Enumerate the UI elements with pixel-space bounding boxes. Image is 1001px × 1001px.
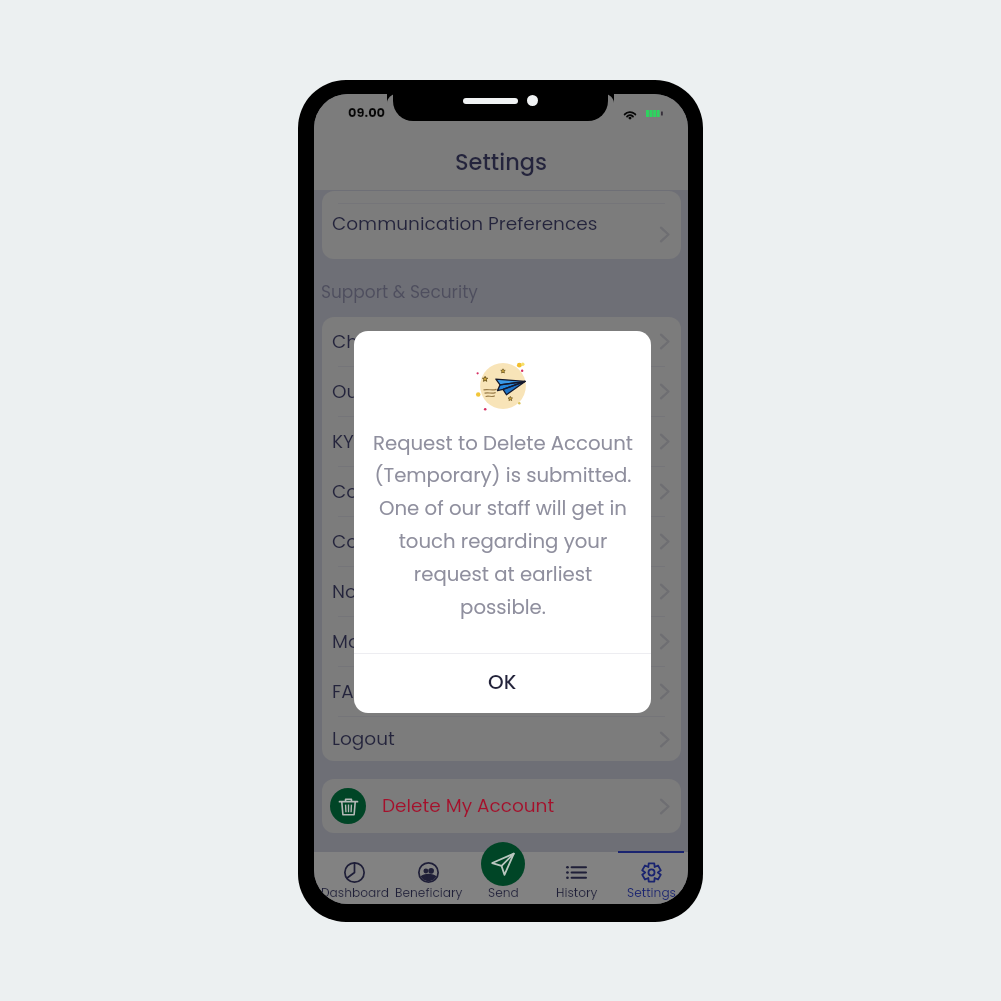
staticText: KYC Details bbox=[332, 429, 436, 455]
button[interactable] bbox=[614, 851, 688, 904]
button[interactable]: Communication Preferences bbox=[322, 191, 681, 259]
button[interactable] bbox=[318, 851, 392, 904]
staticText: Communication Preferences bbox=[332, 211, 598, 237]
staticText: Logout bbox=[332, 726, 395, 752]
staticText: OK bbox=[488, 668, 517, 696]
staticText: Request to Delete Account (Temporary) is… bbox=[371, 429, 635, 621]
staticText: History bbox=[556, 884, 598, 901]
staticText: Settings bbox=[455, 146, 548, 177]
button[interactable] bbox=[466, 851, 540, 904]
staticText: Change Password bbox=[332, 329, 501, 355]
staticText: Dashboard bbox=[321, 884, 390, 901]
button[interactable]: Change Password bbox=[322, 317, 681, 366]
staticText: Contact Us bbox=[332, 479, 435, 505]
staticText: 09.00 bbox=[348, 103, 386, 121]
button[interactable]: Complaints bbox=[322, 517, 681, 566]
button[interactable] bbox=[540, 851, 614, 904]
button[interactable]: FAQs bbox=[322, 667, 681, 716]
staticText: Send bbox=[488, 884, 519, 901]
other: Send bbox=[481, 842, 525, 886]
button[interactable]: Contact Us bbox=[322, 467, 681, 516]
staticText: Settings bbox=[627, 884, 676, 901]
staticText: Our Services bbox=[332, 379, 447, 405]
button[interactable] bbox=[392, 851, 466, 904]
button[interactable]: Notifications bbox=[322, 567, 681, 616]
button[interactable]: Delete My Account bbox=[322, 779, 681, 833]
staticText: FAQs bbox=[332, 679, 379, 705]
staticText: Beneficiary bbox=[395, 884, 463, 901]
button[interactable]: More Info bbox=[322, 617, 681, 666]
button[interactable]: OK bbox=[354, 654, 651, 713]
button[interactable]: Our Services bbox=[322, 367, 681, 416]
staticText: Delete My Account bbox=[382, 793, 555, 819]
button[interactable]: KYC Details bbox=[322, 417, 681, 466]
staticText: More Info bbox=[332, 629, 418, 655]
staticText: Complaints bbox=[332, 529, 440, 555]
button[interactable]: Logout bbox=[322, 717, 681, 761]
staticText: Notifications bbox=[332, 579, 448, 605]
staticText: Support & Security bbox=[321, 280, 478, 304]
